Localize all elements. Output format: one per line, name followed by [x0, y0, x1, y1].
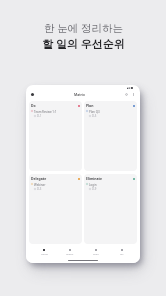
staticText: My — [120, 252, 124, 255]
staticText: Login — [89, 183, 97, 187]
button[interactable]: Do — [29, 101, 82, 171]
staticText: Delegate — [31, 176, 47, 181]
button[interactable]: Home — [31, 246, 57, 257]
staticText: D-1 — [37, 114, 42, 118]
staticText: D-3 — [37, 187, 42, 191]
button[interactable]: Search — [123, 91, 130, 98]
staticText: Team Review 1:1 — [34, 110, 57, 114]
button[interactable]: Delegate — [29, 174, 82, 244]
staticText: Webinar — [34, 183, 46, 187]
staticText: Eliminate — [86, 176, 102, 181]
staticText: Matrix — [66, 252, 74, 255]
button[interactable]: Stats — [83, 246, 109, 257]
button[interactable]: Profile — [29, 91, 36, 98]
button[interactable]: Eliminate — [84, 174, 137, 244]
button[interactable]: Matrix — [57, 246, 83, 257]
staticText: Home — [41, 252, 48, 255]
staticText: 할 일의 우선순위 — [42, 36, 125, 51]
staticText: Plan Q3 — [89, 110, 100, 114]
button[interactable]: More options — [130, 91, 137, 98]
staticText: Do — [31, 103, 36, 108]
staticText: Matrix — [74, 92, 85, 97]
staticText: Plan — [86, 103, 94, 108]
button[interactable]: My — [109, 246, 135, 257]
staticText: D-5 — [92, 114, 97, 118]
button[interactable]: Plan — [84, 101, 137, 171]
staticText: Stats — [93, 252, 99, 255]
staticText: 한 눈에 정리하는 — [44, 21, 123, 35]
staticText: D-9 — [92, 187, 97, 191]
